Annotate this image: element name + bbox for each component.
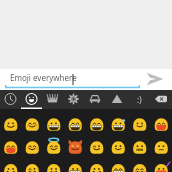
staticText: Emoji everywhere (10, 72, 77, 83)
button[interactable]: Send (140, 69, 172, 90)
button[interactable]: Travel (84, 90, 106, 109)
button[interactable] (63, 109, 84, 172)
button[interactable]: Recently used (0, 90, 21, 109)
button[interactable] (42, 109, 63, 172)
button[interactable]: Smileys (21, 90, 42, 109)
button[interactable] (84, 109, 106, 172)
button[interactable] (128, 109, 150, 172)
button[interactable] (0, 109, 21, 172)
button[interactable]: Backspace (150, 90, 172, 109)
button[interactable]: Objects (42, 90, 63, 109)
button[interactable] (21, 109, 42, 172)
button[interactable] (150, 109, 172, 172)
button[interactable]: Emoticons (128, 90, 150, 109)
button[interactable] (106, 109, 128, 172)
button[interactable]: Emoji everywhere (0, 69, 172, 90)
button[interactable]: Nature (63, 90, 84, 109)
button[interactable]: Places (106, 90, 128, 109)
staticText: :) (137, 94, 142, 105)
